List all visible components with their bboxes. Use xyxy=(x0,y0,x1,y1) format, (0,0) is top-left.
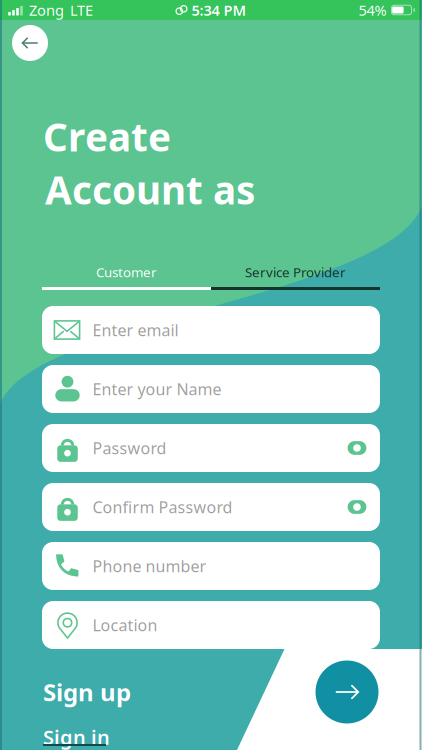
staticText: Zong xyxy=(29,0,64,20)
staticText: Customer xyxy=(96,263,157,281)
button[interactable]: Customer xyxy=(42,259,211,285)
staticText: Password xyxy=(92,437,166,459)
button[interactable]: Continue xyxy=(315,660,378,723)
staticText: Service Provider xyxy=(245,263,346,281)
staticText: 54% xyxy=(358,0,386,20)
button[interactable]: Show password xyxy=(343,434,371,462)
staticText: Confirm Password xyxy=(92,496,232,518)
staticText: 5:34 PM xyxy=(191,0,246,20)
staticText: LTE xyxy=(70,0,93,20)
button[interactable]: Show password xyxy=(343,493,371,521)
staticText: Location xyxy=(92,614,157,636)
staticText: Create xyxy=(43,111,171,162)
staticText: Sign in xyxy=(43,724,110,750)
button[interactable]: Sign up xyxy=(43,678,143,706)
button[interactable]: Service Provider xyxy=(211,259,380,285)
staticText: Sign up xyxy=(43,676,131,708)
button[interactable]: Sign in xyxy=(43,726,143,750)
staticText: Enter email xyxy=(92,319,178,341)
staticText: Phone number xyxy=(92,555,206,577)
staticText: Enter your Name xyxy=(92,378,221,400)
button[interactable]: Back xyxy=(12,25,48,61)
staticText: Account as xyxy=(45,164,255,215)
